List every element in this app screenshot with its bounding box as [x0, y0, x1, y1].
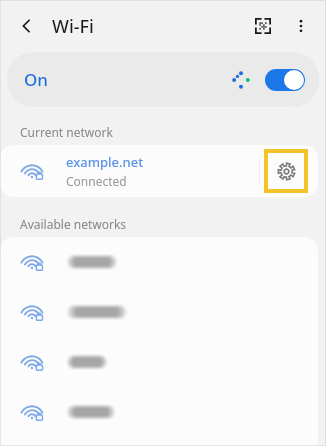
- button[interactable]: On: [7, 52, 319, 107]
- staticText: On: [24, 68, 48, 91]
- staticText: Current network: [20, 124, 113, 140]
- button[interactable]: [0, 387, 318, 437]
- button[interactable]: [0, 287, 318, 337]
- button[interactable]: [0, 237, 318, 287]
- staticText: Wi-Fi: [52, 14, 94, 39]
- staticText: Available networks: [20, 216, 127, 232]
- button[interactable]: [0, 337, 318, 387]
- button[interactable]: Network settings: [266, 151, 306, 191]
- button[interactable]: More options: [284, 9, 318, 43]
- button[interactable]: Back: [10, 9, 44, 43]
- button[interactable]: Scan QR code: [246, 9, 280, 43]
- staticText: example.net: [66, 153, 144, 171]
- staticText: Connected: [66, 173, 127, 189]
- button[interactable]: Wi-Fi on: [265, 69, 305, 91]
- button[interactable]: example.net: [0, 145, 318, 197]
